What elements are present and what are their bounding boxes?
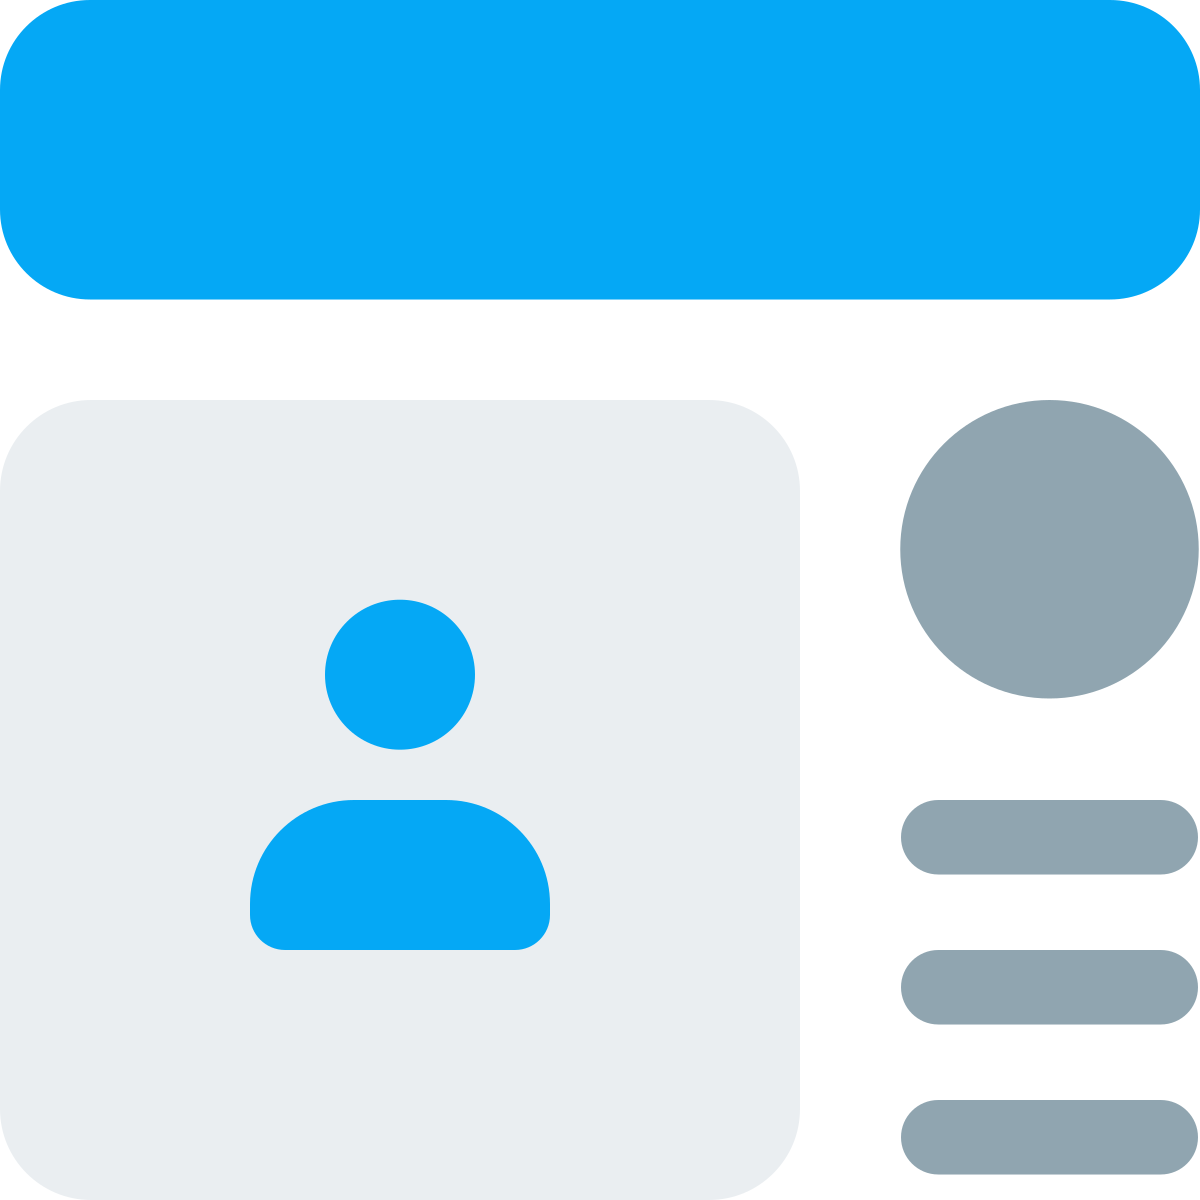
button[interactable]: Profile photo [0,400,800,1200]
button[interactable]: Contact avatar [900,400,1199,698]
button[interactable]: Header [0,0,1200,299]
